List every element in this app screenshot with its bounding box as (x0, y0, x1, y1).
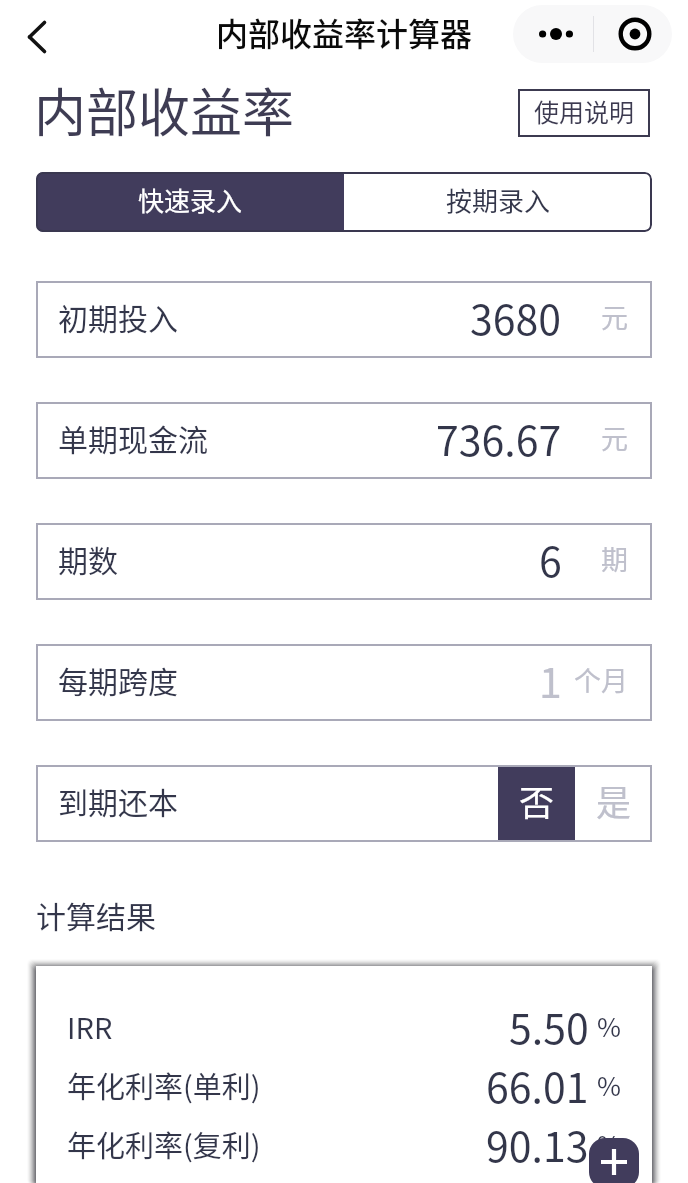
button[interactable]: 否 (498, 765, 575, 842)
staticText: 年化利率(单利) (67, 1064, 261, 1106)
staticText: 3680 (470, 287, 562, 346)
staticText: 每期跨度 (58, 658, 178, 701)
button[interactable]: 使用说明 (518, 89, 650, 137)
staticText: % (597, 1125, 621, 1163)
staticText: 个月 (574, 660, 628, 699)
staticText: 6 (539, 529, 562, 588)
button[interactable]: 按期录入 (344, 172, 652, 232)
staticText: 年化利率(复利) (67, 1123, 261, 1165)
staticText: 是 (596, 775, 632, 826)
staticText: 使用说明 (534, 93, 635, 129)
staticText: 期 (601, 539, 628, 578)
staticText: 否 (519, 775, 555, 826)
button[interactable]: Back (15, 15, 59, 59)
staticText: 到期还本 (58, 779, 178, 822)
staticText: 元 (601, 297, 628, 336)
staticText: % (597, 1066, 621, 1104)
staticText: 元 (601, 418, 628, 457)
staticText: 快速录入 (138, 181, 243, 219)
staticText: 单期现金流 (58, 416, 208, 459)
staticText: 按期录入 (446, 181, 551, 219)
button[interactable]: Close (594, 5, 672, 63)
staticText: IRR (67, 1005, 113, 1047)
staticText: 736.67 (436, 408, 562, 467)
staticText: 内部收益率 (34, 72, 295, 144)
staticText: 期数 (58, 537, 118, 580)
staticText: 66.01 (486, 1055, 589, 1114)
staticText: % (597, 1007, 621, 1045)
button[interactable]: 是 (575, 765, 652, 842)
staticText: 1 (539, 650, 562, 709)
staticText: 初期投入 (58, 295, 178, 338)
staticText: 5.50 (509, 996, 589, 1055)
button[interactable]: Add (589, 1138, 639, 1183)
button[interactable]: More options (513, 5, 593, 63)
staticText: 计算结果 (36, 893, 156, 936)
staticText: 内部收益率计算器 (216, 9, 473, 55)
button[interactable]: 快速录入 (36, 172, 344, 232)
staticText: 90.13 (486, 1114, 589, 1173)
